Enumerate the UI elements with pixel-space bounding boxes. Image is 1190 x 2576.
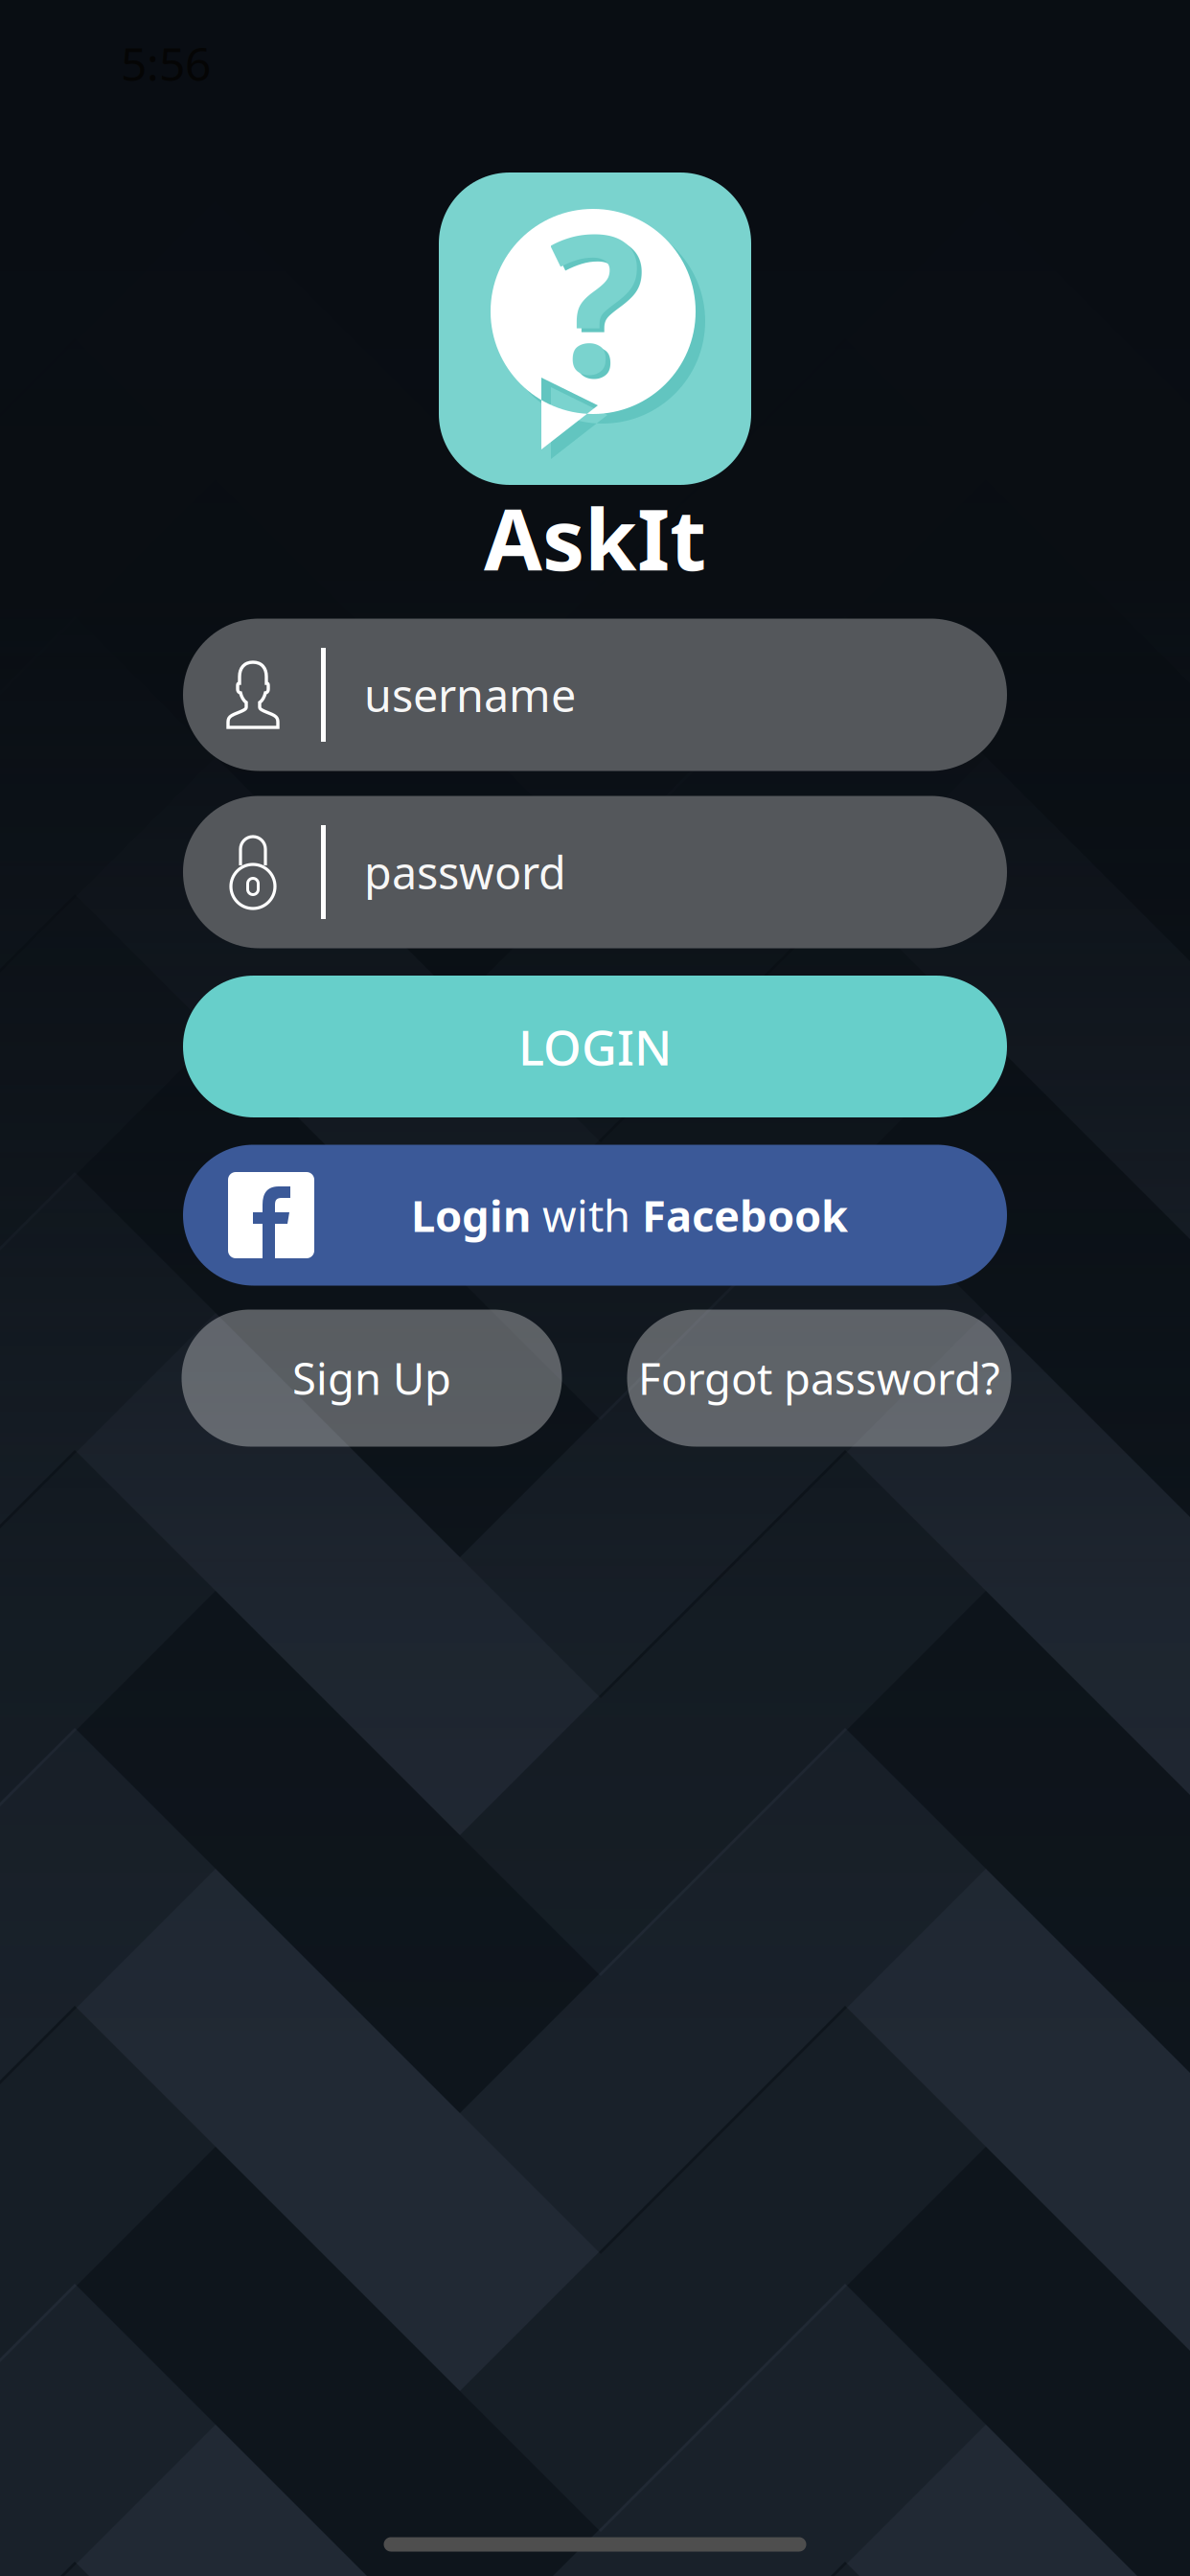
button[interactable]: Login bbox=[183, 1145, 1007, 1286]
staticText: LOGIN bbox=[518, 1014, 672, 1079]
staticText: Sign Up bbox=[292, 1349, 451, 1407]
button[interactable]: Forgot password? bbox=[627, 1310, 1011, 1447]
staticText: Login bbox=[411, 1186, 542, 1244]
staticText: with bbox=[542, 1186, 642, 1244]
staticText: ? bbox=[554, 175, 645, 429]
button[interactable]: Sign Up bbox=[182, 1310, 562, 1447]
staticText: 5:56 bbox=[121, 33, 211, 94]
staticText: password bbox=[364, 842, 566, 902]
staticText: AskIt bbox=[484, 482, 706, 594]
staticText: Forgot password? bbox=[638, 1349, 1000, 1407]
staticText: username bbox=[364, 665, 576, 724]
staticText: ? bbox=[549, 171, 641, 425]
staticText: Facebook bbox=[642, 1186, 848, 1244]
button[interactable]: LOGIN bbox=[183, 976, 1007, 1117]
